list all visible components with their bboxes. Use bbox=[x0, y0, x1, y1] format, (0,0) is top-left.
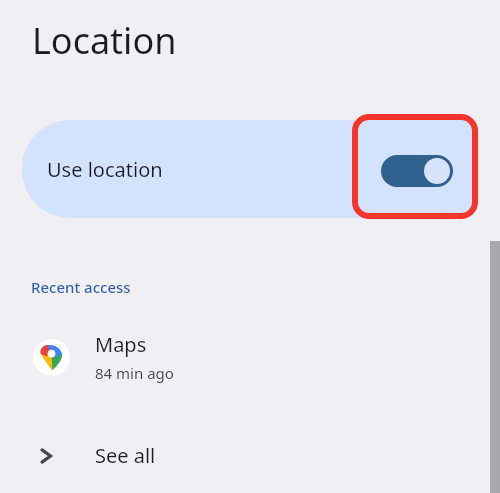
button[interactable]: See all bbox=[0, 428, 480, 483]
button[interactable]: Recent access bbox=[31, 277, 131, 297]
button[interactable]: Maps bbox=[0, 326, 480, 388]
staticText: Use location bbox=[47, 156, 163, 183]
staticText: 84 min ago bbox=[95, 363, 174, 383]
button[interactable]: Use location bbox=[22, 120, 478, 218]
staticText: See all bbox=[95, 442, 156, 469]
button[interactable]: Use location toggle, on bbox=[381, 155, 453, 187]
staticText: Recent access bbox=[31, 277, 131, 297]
staticText: Location bbox=[32, 16, 177, 65]
staticText: Maps bbox=[95, 331, 147, 358]
